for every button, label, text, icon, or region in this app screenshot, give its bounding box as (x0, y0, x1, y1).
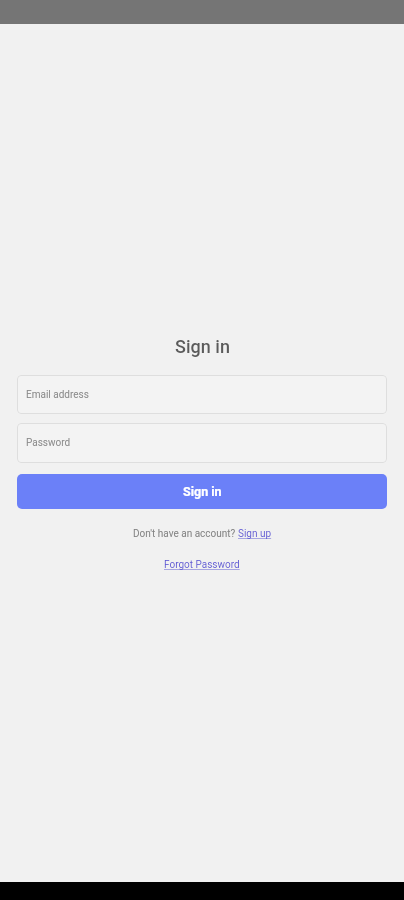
staticText: Sign in (175, 336, 230, 357)
button[interactable]: Forgot Password (164, 559, 240, 571)
staticText: Forgot Password (164, 559, 240, 571)
button[interactable]: Password (17, 423, 387, 463)
staticText: Password (26, 437, 71, 449)
button[interactable]: Sign up (238, 528, 272, 540)
staticText: Email address (26, 389, 89, 401)
button[interactable]: Sign in (17, 474, 387, 509)
button[interactable]: Email address (17, 375, 387, 414)
staticText: Don't have an account? (133, 528, 238, 540)
staticText: Sign up (238, 528, 272, 540)
staticText: Sign in (183, 484, 222, 499)
